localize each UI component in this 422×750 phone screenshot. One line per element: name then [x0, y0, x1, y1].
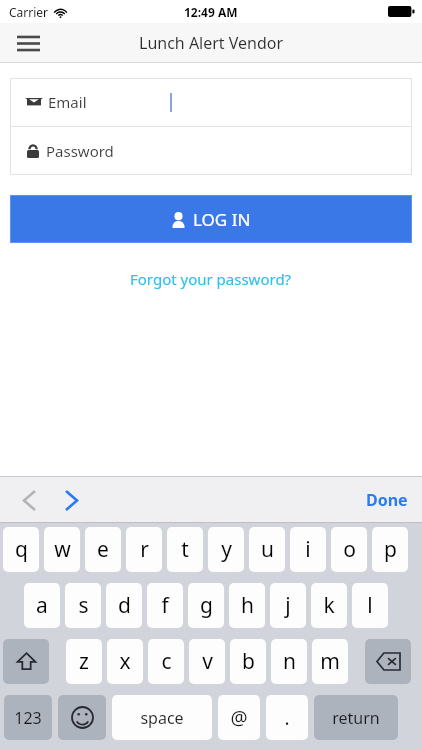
- staticText: d: [118, 591, 131, 620]
- staticText: a: [36, 591, 48, 620]
- button[interactable]: p: [372, 527, 408, 572]
- button[interactable]: Forgot your password?: [122, 265, 300, 293]
- button[interactable]: v: [189, 639, 225, 684]
- button[interactable]: c: [148, 639, 184, 684]
- button[interactable]: Previous field: [10, 480, 48, 520]
- button[interactable]: Shift: [3, 639, 49, 684]
- button[interactable]: h: [229, 583, 265, 628]
- staticText: @: [230, 705, 248, 731]
- staticText: x: [119, 647, 131, 676]
- button[interactable]: Next field: [52, 480, 90, 520]
- staticText: h: [241, 591, 254, 620]
- staticText: v: [202, 647, 213, 676]
- staticText: s: [78, 591, 89, 620]
- staticText: o: [343, 535, 356, 564]
- staticText: return: [332, 707, 380, 729]
- staticText: r: [140, 535, 149, 564]
- button[interactable]: z: [66, 639, 102, 684]
- button[interactable]: Email: [10, 78, 412, 126]
- staticText: Lunch Alert Vendor: [139, 32, 284, 54]
- button[interactable]: r: [126, 527, 162, 572]
- staticText: u: [261, 535, 274, 564]
- button[interactable]: a: [24, 583, 60, 628]
- staticText: y: [221, 535, 232, 564]
- button[interactable]: t: [167, 527, 203, 572]
- staticText: j: [285, 591, 291, 620]
- staticText: i: [305, 535, 311, 564]
- staticText: k: [323, 591, 335, 620]
- staticText: LOG IN: [193, 208, 251, 231]
- button[interactable]: g: [188, 583, 224, 628]
- button[interactable]: Emoji: [58, 695, 106, 740]
- button[interactable]: Done: [352, 481, 422, 519]
- button[interactable]: b: [230, 639, 266, 684]
- button[interactable]: Password: [10, 127, 412, 175]
- staticText: z: [79, 647, 89, 676]
- button[interactable]: LOG IN: [10, 195, 412, 243]
- button[interactable]: x: [107, 639, 143, 684]
- button[interactable]: w: [44, 527, 80, 572]
- button[interactable]: f: [147, 583, 183, 628]
- button[interactable]: s: [65, 583, 101, 628]
- button[interactable]: space: [112, 695, 212, 740]
- button[interactable]: n: [271, 639, 307, 684]
- staticText: q: [15, 535, 28, 564]
- button[interactable]: Menu: [6, 25, 50, 61]
- button[interactable]: return: [314, 695, 398, 740]
- button[interactable]: k: [311, 583, 347, 628]
- button[interactable]: Backspace: [365, 639, 411, 684]
- button[interactable]: @: [218, 695, 260, 740]
- staticText: e: [97, 535, 109, 564]
- button[interactable]: .: [266, 695, 308, 740]
- staticText: Done: [366, 489, 408, 511]
- button[interactable]: i: [290, 527, 326, 572]
- button[interactable]: m: [312, 639, 348, 684]
- staticText: f: [161, 591, 169, 620]
- staticText: 12:49 AM: [184, 4, 238, 20]
- staticText: n: [283, 647, 296, 676]
- button[interactable]: e: [85, 527, 121, 572]
- button[interactable]: d: [106, 583, 142, 628]
- staticText: l: [367, 591, 373, 620]
- staticText: p: [384, 535, 397, 564]
- staticText: Carrier: [9, 4, 49, 20]
- staticText: 123: [14, 707, 42, 729]
- staticText: Forgot your password?: [130, 269, 292, 289]
- staticText: .: [284, 705, 290, 731]
- staticText: space: [140, 707, 184, 729]
- button[interactable]: y: [208, 527, 244, 572]
- staticText: g: [200, 591, 213, 620]
- staticText: Password: [46, 141, 114, 161]
- staticText: m: [320, 647, 340, 676]
- button[interactable]: l: [352, 583, 388, 628]
- staticText: w: [54, 535, 71, 564]
- button[interactable]: o: [331, 527, 367, 572]
- button[interactable]: q: [3, 527, 39, 572]
- button[interactable]: u: [249, 527, 285, 572]
- staticText: c: [161, 647, 172, 676]
- staticText: b: [242, 647, 255, 676]
- staticText: Email: [48, 92, 87, 112]
- staticText: t: [181, 535, 189, 564]
- button[interactable]: j: [270, 583, 306, 628]
- button[interactable]: 123: [4, 695, 52, 740]
